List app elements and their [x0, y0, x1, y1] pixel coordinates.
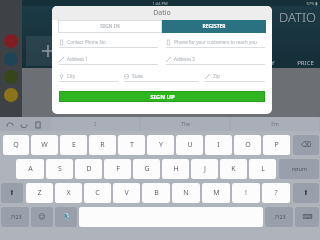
- staticText: .?123: [9, 214, 22, 221]
- staticText: J: [204, 164, 206, 174]
- button[interactable]: T: [118, 135, 145, 155]
- button[interactable]: return: [279, 159, 319, 179]
- staticText: G: [144, 164, 150, 174]
- button[interactable]: Shift: [1, 183, 23, 203]
- button[interactable]: J: [191, 159, 218, 179]
- staticText: ?: [274, 188, 278, 198]
- button[interactable]: X: [55, 183, 82, 203]
- button[interactable]: M: [202, 183, 230, 203]
- staticText: DATIO: [279, 8, 316, 26]
- button[interactable]: REGISTER: [162, 20, 266, 33]
- button[interactable]: H: [162, 159, 189, 179]
- staticText: 57% ▮: [306, 1, 318, 6]
- button[interactable]: P: [263, 135, 290, 155]
- button[interactable]: E: [60, 135, 87, 155]
- button[interactable]: Address 2: [166, 56, 265, 65]
- button[interactable]: Phone for your customers to reach you: [166, 39, 265, 48]
- button[interactable]: L: [249, 159, 276, 179]
- staticText: Contact Phone No: [67, 39, 106, 45]
- button[interactable]: The: [141, 117, 229, 131]
- staticText: T: [130, 140, 134, 150]
- staticText: C: [95, 188, 100, 198]
- staticText: O: [245, 140, 251, 150]
- staticText: Zip: [213, 73, 220, 79]
- button[interactable]: U: [176, 135, 203, 155]
- button[interactable]: F: [104, 159, 131, 179]
- button[interactable]: R: [89, 135, 116, 155]
- staticText: 🎙: [62, 213, 71, 221]
- staticText: Address 2: [174, 56, 195, 62]
- staticText: Q: [13, 140, 19, 150]
- staticText: I: [94, 121, 96, 128]
- button[interactable]: W: [31, 135, 58, 155]
- staticText: X: [66, 188, 71, 198]
- button[interactable]: K: [220, 159, 247, 179]
- staticText: F: [116, 164, 120, 174]
- staticText: R: [100, 140, 105, 150]
- staticText: SIGN UP: [150, 93, 175, 101]
- button[interactable]: .?123: [1, 207, 29, 227]
- staticText: QTY: [263, 59, 275, 67]
- staticText: 1:44 PM: [152, 1, 168, 6]
- staticText: Z: [37, 188, 42, 198]
- button[interactable]: SIGN UP: [59, 91, 265, 102]
- staticText: H: [173, 164, 179, 174]
- button[interactable]: B: [142, 183, 170, 203]
- staticText: M: [213, 188, 220, 198]
- button[interactable]: Address 1: [59, 56, 158, 65]
- button[interactable]: N: [172, 183, 200, 203]
- button[interactable]: Backspace: [293, 135, 319, 155]
- staticText: U: [187, 140, 193, 150]
- staticText: S: [58, 164, 62, 174]
- button[interactable]: I'm: [231, 117, 319, 131]
- staticText: ⬆: [303, 189, 309, 197]
- staticText: Phone for your customers to reach you: [174, 39, 257, 45]
- button[interactable]: Paste: [32, 119, 43, 130]
- staticText: City: [67, 73, 75, 79]
- button[interactable]: V: [113, 183, 140, 203]
- button[interactable]: Hide keyboard: [295, 207, 319, 227]
- staticText: return: [292, 166, 307, 173]
- button[interactable]: Z: [26, 183, 53, 203]
- staticText: ⌫: [301, 141, 311, 149]
- button[interactable]: State: [124, 73, 199, 82]
- button[interactable]: Dictate: [55, 207, 77, 227]
- staticText: ☺: [38, 213, 46, 221]
- button[interactable]: D: [75, 159, 102, 179]
- staticText: Address 1: [67, 56, 88, 62]
- button[interactable]: Q: [3, 135, 29, 155]
- staticText: W: [41, 140, 48, 150]
- staticText: A: [28, 164, 33, 174]
- button[interactable]: Shift: [293, 183, 319, 203]
- staticText: ⌨: [302, 213, 313, 221]
- button[interactable]: S: [46, 159, 73, 179]
- button[interactable]: Redo: [18, 119, 29, 130]
- button[interactable]: Undo: [4, 119, 15, 130]
- button[interactable]: ?: [262, 183, 290, 203]
- button[interactable]: !: [232, 183, 260, 203]
- button[interactable]: Y: [147, 135, 174, 155]
- staticText: I: [217, 140, 220, 150]
- button[interactable]: Contact Phone No: [59, 39, 158, 48]
- button[interactable]: I: [205, 135, 232, 155]
- staticText: !: [245, 188, 247, 198]
- staticText: .?123: [273, 214, 286, 221]
- button[interactable]: Emoji: [31, 207, 53, 227]
- button[interactable]: Add item: [26, 36, 70, 66]
- button[interactable]: A: [16, 159, 44, 179]
- staticText: B: [154, 188, 159, 198]
- button[interactable]: Zip: [205, 73, 265, 82]
- button[interactable]: SIGN IN: [58, 20, 162, 33]
- staticText: Datio: [153, 8, 171, 18]
- staticText: ⬆: [9, 189, 15, 197]
- staticText: P: [274, 140, 279, 150]
- button[interactable]: City: [59, 73, 118, 82]
- button[interactable]: O: [234, 135, 261, 155]
- button[interactable]: G: [133, 159, 160, 179]
- button[interactable]: C: [84, 183, 111, 203]
- button[interactable]: .?123: [265, 207, 293, 227]
- staticText: N: [183, 188, 189, 198]
